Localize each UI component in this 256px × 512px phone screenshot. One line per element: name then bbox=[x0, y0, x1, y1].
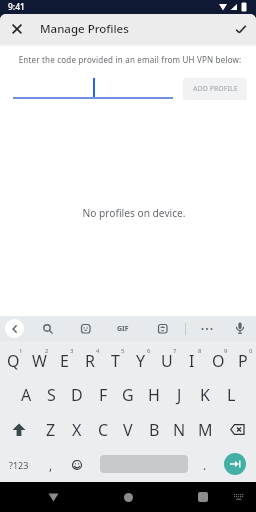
staticText: B bbox=[149, 419, 160, 441]
staticText: 1 bbox=[19, 347, 23, 355]
button[interactable]: P bbox=[230, 344, 256, 377]
staticText: D bbox=[71, 384, 83, 406]
button[interactable]: Y bbox=[128, 344, 154, 377]
button[interactable]: V bbox=[115, 413, 141, 446]
staticText: Q bbox=[7, 350, 20, 372]
staticText: No profiles on device. bbox=[6, 206, 256, 220]
button[interactable] bbox=[233, 21, 249, 37]
button[interactable] bbox=[218, 413, 256, 446]
staticText: R bbox=[85, 350, 95, 372]
staticText: V bbox=[123, 419, 133, 441]
button[interactable]: Z bbox=[38, 413, 64, 446]
staticText: 7 bbox=[173, 347, 177, 355]
button[interactable]: D bbox=[64, 378, 90, 411]
staticText: S bbox=[47, 384, 56, 406]
button[interactable] bbox=[9, 21, 25, 37]
button[interactable]: R bbox=[77, 344, 103, 377]
staticText: 0 bbox=[249, 347, 253, 355]
button[interactable] bbox=[43, 324, 53, 334]
staticText: , bbox=[49, 457, 53, 473]
staticText: C bbox=[98, 419, 109, 441]
staticText: 6 bbox=[147, 347, 151, 355]
button[interactable]: . bbox=[192, 448, 218, 481]
button[interactable]: N bbox=[166, 413, 192, 446]
button[interactable]: S bbox=[38, 378, 64, 411]
staticText: L bbox=[227, 384, 236, 406]
button[interactable]: A bbox=[13, 378, 39, 411]
button[interactable]: C bbox=[90, 413, 116, 446]
staticText: Y bbox=[136, 350, 146, 372]
button[interactable]: G bbox=[115, 378, 141, 411]
staticText: J bbox=[177, 384, 182, 406]
staticText: 4 bbox=[96, 347, 100, 355]
button[interactable] bbox=[64, 448, 90, 481]
staticText: ?123 bbox=[9, 459, 29, 471]
button[interactable]: I bbox=[179, 344, 205, 377]
button[interactable] bbox=[200, 326, 214, 332]
staticText: 2 bbox=[45, 347, 49, 355]
staticText: . bbox=[203, 457, 207, 473]
staticText: X bbox=[72, 419, 82, 441]
button[interactable]: GIF bbox=[117, 324, 129, 334]
button[interactable]: T bbox=[102, 344, 128, 377]
button[interactable]: M bbox=[192, 413, 218, 446]
button[interactable]: J bbox=[166, 378, 192, 411]
button[interactable]: , bbox=[38, 448, 64, 481]
staticText: 9 bbox=[224, 347, 228, 355]
staticText: ADD PROFILE bbox=[193, 84, 238, 94]
button[interactable] bbox=[224, 453, 246, 475]
button[interactable]: F bbox=[90, 378, 116, 411]
button[interactable] bbox=[190, 482, 216, 512]
staticText: F bbox=[99, 384, 108, 406]
button[interactable] bbox=[115, 482, 141, 512]
button[interactable]: U bbox=[154, 344, 180, 377]
staticText: A bbox=[21, 384, 32, 406]
button[interactable]: H bbox=[141, 378, 167, 411]
staticText: W bbox=[32, 350, 47, 372]
button[interactable] bbox=[235, 322, 245, 335]
staticText: 9:41 bbox=[8, 1, 25, 13]
staticText: I bbox=[189, 350, 195, 372]
button[interactable]: ?123 bbox=[0, 448, 38, 481]
button[interactable]: O bbox=[205, 344, 231, 377]
staticText: 5 bbox=[121, 347, 125, 355]
staticText: N bbox=[173, 419, 186, 441]
button[interactable]: Q bbox=[0, 344, 26, 377]
button[interactable]: E bbox=[51, 344, 77, 377]
button[interactable]: L bbox=[218, 378, 244, 411]
button[interactable] bbox=[40, 482, 66, 512]
staticText: 3 bbox=[70, 347, 74, 355]
staticText: Manage Profiles bbox=[40, 21, 129, 37]
staticText: P bbox=[238, 350, 248, 372]
button[interactable] bbox=[5, 319, 24, 338]
button[interactable] bbox=[228, 482, 250, 512]
staticText: G bbox=[122, 384, 134, 406]
button[interactable] bbox=[81, 324, 91, 334]
staticText: Z bbox=[46, 419, 56, 441]
staticText: O bbox=[212, 350, 225, 372]
staticText: H bbox=[148, 384, 160, 406]
staticText: 8 bbox=[198, 347, 202, 355]
staticText: U bbox=[161, 350, 173, 372]
button[interactable]: B bbox=[141, 413, 167, 446]
staticText: T bbox=[111, 350, 120, 372]
button[interactable]: ADD PROFILE bbox=[183, 78, 247, 100]
staticText: K bbox=[200, 384, 210, 406]
staticText: M bbox=[198, 419, 213, 441]
button[interactable] bbox=[158, 324, 168, 334]
staticText: Enter the code provided in an email from… bbox=[2, 54, 256, 65]
staticText: E bbox=[60, 350, 69, 372]
button[interactable]: K bbox=[192, 378, 218, 411]
button[interactable]: X bbox=[64, 413, 90, 446]
button[interactable]: W bbox=[26, 344, 52, 377]
button[interactable] bbox=[0, 413, 38, 446]
